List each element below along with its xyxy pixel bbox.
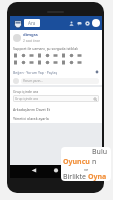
button[interactable]: Arkadaşlarını Davet Et bbox=[10, 105, 102, 114]
button[interactable]: App 3 bbox=[37, 60, 42, 65]
staticText: Ara bbox=[28, 20, 36, 26]
button[interactable]: App 6 bbox=[61, 60, 66, 65]
button[interactable]: Home bbox=[13, 19, 22, 28]
staticText: Oyuncu bbox=[63, 157, 92, 167]
button[interactable]: App 4 bbox=[45, 60, 50, 65]
staticText: ve bbox=[84, 167, 89, 172]
button[interactable]: App 1 bbox=[21, 60, 26, 65]
staticText: Arkadaşlarını Davet Et bbox=[13, 107, 51, 112]
button[interactable]: App 8 bbox=[77, 53, 82, 58]
staticText: Support ile uzmanı, şu sorguda istiklalı bbox=[13, 46, 79, 51]
button[interactable]: App 8 bbox=[77, 60, 82, 65]
staticText: Bulun bbox=[92, 147, 109, 167]
staticText: Birlikte bbox=[63, 172, 88, 181]
button[interactable]: Yönetici olarak ayarla bbox=[10, 114, 102, 123]
button[interactable]: Messages bbox=[75, 19, 83, 27]
staticText: 2 saat önce bbox=[23, 39, 40, 43]
staticText: Yorum yazın... bbox=[23, 79, 43, 83]
button[interactable]: App 6 bbox=[61, 53, 66, 58]
staticText: dimgss bbox=[23, 32, 38, 38]
staticText: Grup içinde ara bbox=[15, 97, 38, 101]
button[interactable]: App 0 bbox=[13, 53, 18, 58]
button[interactable]: Profile bbox=[92, 19, 100, 27]
button[interactable]: App 5 bbox=[53, 53, 58, 58]
staticText: Beğen · Yorum Yap · Paylaş bbox=[13, 70, 58, 75]
staticText: Grup içinde ara bbox=[13, 89, 39, 94]
staticText: Oynayın bbox=[88, 172, 109, 181]
button[interactable]: App 1 bbox=[21, 53, 26, 58]
button[interactable]: Grup içinde ara bbox=[13, 95, 99, 102]
button[interactable]: App 7 bbox=[69, 60, 74, 65]
button[interactable]: App 2 bbox=[29, 53, 34, 58]
button[interactable]: App 0 bbox=[13, 60, 18, 65]
button[interactable]: App 7 bbox=[69, 53, 74, 58]
button[interactable]: App 3 bbox=[37, 53, 42, 58]
staticText: Yönetici olarak ayarla bbox=[13, 116, 49, 121]
button[interactable]: Notifications bbox=[83, 19, 91, 27]
button[interactable]: App 5 bbox=[53, 60, 58, 65]
button[interactable]: Yorum yazın... bbox=[21, 78, 99, 84]
button[interactable]: Ara bbox=[24, 19, 40, 27]
button[interactable]: App 4 bbox=[45, 53, 50, 58]
button[interactable]: Friend requests bbox=[67, 19, 75, 27]
button[interactable]: App 2 bbox=[29, 60, 34, 65]
